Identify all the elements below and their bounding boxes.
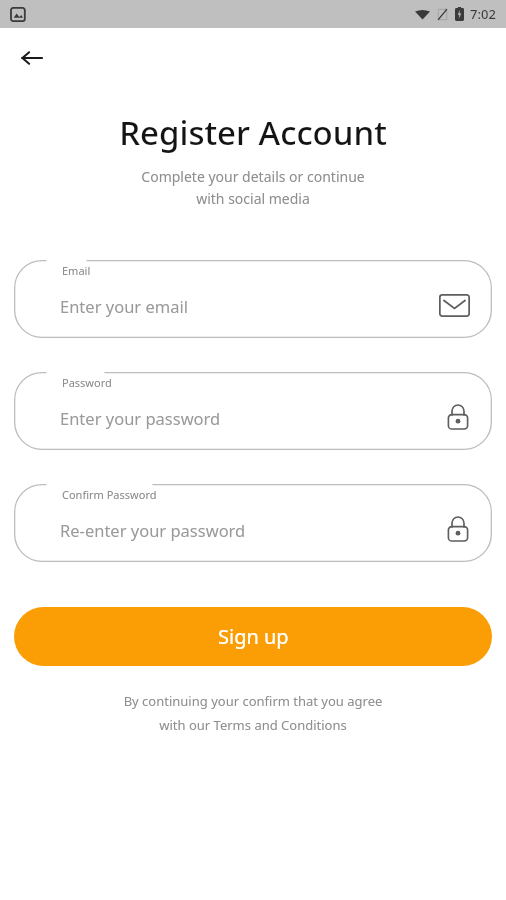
staticText: Password	[62, 375, 112, 390]
staticText: Email	[62, 263, 91, 278]
button[interactable]: Email	[14, 260, 492, 338]
staticText: 7:02	[470, 5, 496, 23]
staticText: Register Account	[0, 110, 506, 155]
staticText: Re-enter your password	[60, 519, 246, 541]
button[interactable]: Back	[10, 36, 54, 80]
staticText: Enter your email	[60, 295, 188, 317]
staticText: Confirm Password	[62, 487, 157, 502]
staticText: Enter your password	[60, 407, 221, 429]
button[interactable]: Password	[14, 372, 492, 450]
staticText: Sign up	[218, 623, 289, 650]
button[interactable]: Confirm Password	[14, 484, 492, 562]
button[interactable]: By continuing your confirm that you agre…	[0, 692, 506, 734]
staticText: Complete your details or continue with s…	[0, 167, 506, 208]
button[interactable]: Sign up	[14, 607, 492, 666]
